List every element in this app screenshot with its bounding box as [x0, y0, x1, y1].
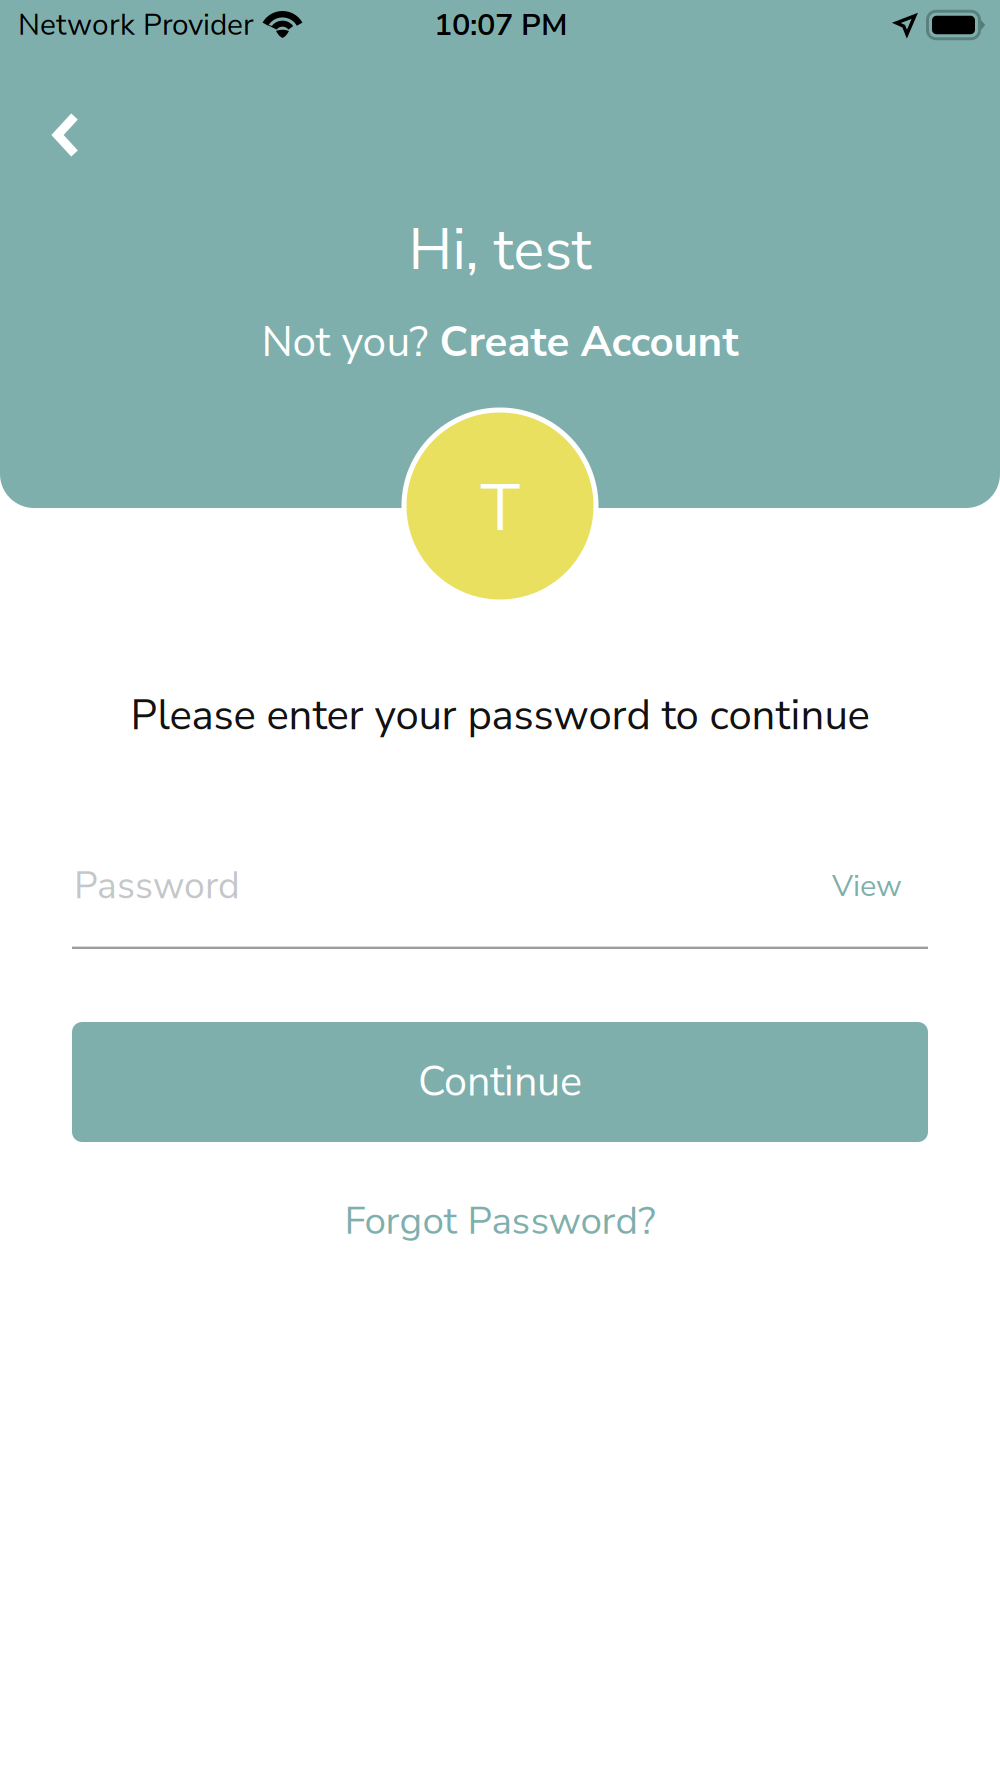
- button[interactable]: Back: [18, 91, 114, 179]
- staticText: Continue: [418, 1054, 582, 1110]
- staticText: Not you? Create Account: [261, 314, 738, 370]
- staticText: Please enter your password to continue: [130, 687, 869, 744]
- staticText: Forgot Password?: [344, 1195, 655, 1247]
- staticText: Network Provider: [18, 5, 254, 45]
- button[interactable]: View: [816, 851, 928, 921]
- staticText: View: [832, 865, 902, 907]
- staticText: Hi, test: [408, 211, 591, 289]
- staticText: 10:07 PM: [434, 4, 568, 46]
- staticText: T: [480, 464, 519, 553]
- staticText: Password: [74, 860, 240, 911]
- button[interactable]: Forgot Password?: [300, 1185, 700, 1257]
- button[interactable]: Not you? Create Account: [0, 315, 1000, 369]
- button[interactable]: Continue: [72, 1022, 928, 1142]
